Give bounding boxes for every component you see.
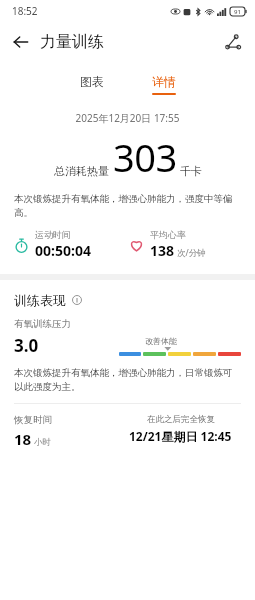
staticText: 18: [14, 429, 32, 449]
staticText: 在此之后完全恢复: [147, 414, 215, 425]
staticText: 91: [234, 8, 241, 16]
staticText: 本次锻炼提升有氧体能，增强心肺能力，强度中等偏高。: [14, 193, 241, 219]
staticText: 小时: [34, 437, 51, 448]
staticText: 3.0: [14, 334, 39, 357]
button[interactable]: Info: [70, 293, 84, 307]
button[interactable]: Share: [219, 28, 247, 56]
staticText: 恢复时间: [14, 414, 52, 426]
staticText: 详情: [152, 74, 176, 89]
staticText: 有氧训练压力: [14, 318, 71, 330]
staticText: 改善体能: [145, 336, 177, 346]
button[interactable]: Back: [6, 27, 36, 57]
staticText: 12/21星期日 12:45: [129, 428, 232, 444]
staticText: 千卡: [180, 164, 202, 178]
button[interactable]: 详情: [144, 72, 184, 97]
staticText: 2025年12月20日 17:55: [0, 111, 255, 125]
staticText: 平均心率: [150, 229, 186, 240]
staticText: 图表: [80, 74, 104, 89]
staticText: 138: [150, 241, 175, 260]
staticText: 力量训练: [40, 32, 104, 52]
staticText: 本次锻炼提升有氧体能，增强心肺能力，日常锻炼可以此强度为主。: [14, 367, 241, 393]
staticText: 训练表现: [14, 292, 66, 308]
staticText: 303: [113, 131, 177, 183]
staticText: 次/分钟: [177, 247, 206, 259]
staticText: 总消耗热量: [54, 164, 109, 178]
button[interactable]: 图表: [72, 72, 112, 97]
staticText: 18:52: [12, 4, 38, 18]
staticText: 运动时间: [35, 229, 71, 240]
staticText: 00:50:04: [35, 241, 91, 260]
